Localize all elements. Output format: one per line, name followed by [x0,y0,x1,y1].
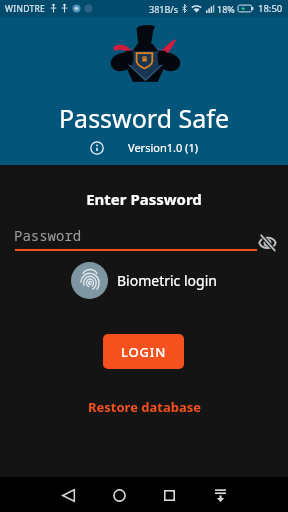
staticText: Password [14,226,82,245]
button[interactable]: Home [102,478,136,512]
button[interactable]: Restore database [82,395,207,419]
staticText: Enter Password [0,189,288,209]
button[interactable]: Hide navigation bar [203,478,237,512]
staticText: Restore database [88,398,201,416]
staticText: 18:50 [258,2,283,15]
button[interactable]: Recent apps [152,478,186,512]
staticText: Password Safe [0,101,288,135]
staticText: 18% [217,3,235,15]
staticText: WINDTRE [5,3,46,15]
staticText: Version1.0 (1) [128,140,198,155]
staticText: Biometric login [117,271,217,290]
staticText: 381B/s [149,3,178,15]
button[interactable]: Back [51,478,85,512]
staticText: LOGIN [121,343,167,361]
button[interactable]: LOGIN [103,334,184,369]
button[interactable]: Toggle password visibility [256,231,278,253]
button[interactable]: Biometric login [71,262,223,299]
